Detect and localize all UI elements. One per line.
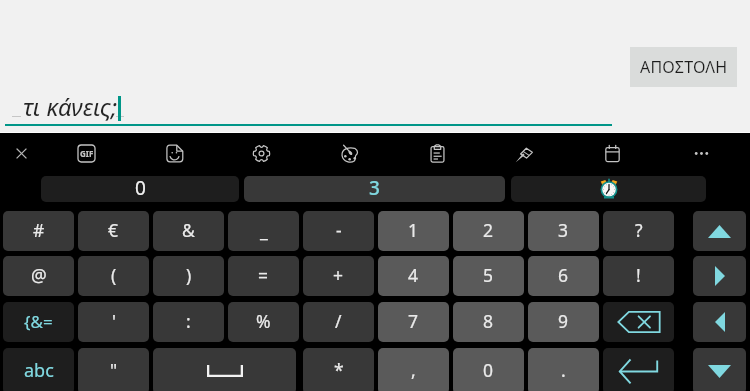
button[interactable]: +	[303, 256, 374, 296]
button[interactable]: )	[153, 256, 224, 296]
staticText: €	[108, 218, 119, 242]
staticText: 7	[408, 309, 419, 333]
staticText: ,	[411, 358, 416, 382]
button[interactable]: 8	[453, 302, 524, 342]
staticText: 4	[408, 263, 419, 287]
button[interactable]: 0	[453, 348, 524, 391]
button[interactable]: Space	[153, 348, 296, 391]
staticText: 5	[483, 263, 494, 287]
button[interactable]: =	[228, 256, 299, 296]
staticText: 3	[369, 176, 380, 201]
staticText: 2	[483, 218, 494, 242]
staticText: +	[333, 263, 344, 287]
staticText: -	[336, 218, 342, 242]
staticText: 9	[558, 309, 569, 333]
staticText: '	[112, 309, 116, 333]
staticText: *	[334, 358, 344, 382]
button[interactable]: 9	[528, 302, 599, 342]
button[interactable]: Close keyboard	[1, 133, 41, 173]
staticText: %	[256, 309, 271, 333]
button[interactable]: *	[303, 348, 374, 391]
staticText: )	[186, 263, 192, 287]
button[interactable]: Themes	[330, 133, 370, 173]
staticText: GIF	[80, 148, 94, 159]
button[interactable]: 4	[378, 256, 449, 296]
button[interactable]: 3	[528, 211, 599, 251]
button[interactable]: Move cursor right	[693, 256, 746, 296]
button[interactable]: Calendar	[592, 133, 632, 173]
button[interactable]: 3	[244, 176, 505, 202]
staticText: @	[31, 263, 47, 287]
staticText: 0	[483, 358, 494, 382]
staticText: (	[111, 263, 117, 287]
button[interactable]: {&=	[3, 302, 74, 342]
button[interactable]: #	[3, 211, 74, 251]
staticText: !	[636, 263, 641, 287]
button[interactable]: 6	[528, 256, 599, 296]
button[interactable]: -	[303, 211, 374, 251]
button[interactable]: Backspace	[603, 302, 674, 342]
button[interactable]: abc	[3, 348, 74, 391]
button[interactable]: More options	[681, 133, 721, 173]
button[interactable]: "	[78, 348, 149, 391]
staticText: "	[110, 358, 118, 382]
staticText: ?	[635, 218, 643, 242]
button[interactable]: Pin	[504, 133, 544, 173]
button[interactable]: (	[78, 256, 149, 296]
staticText: =	[258, 263, 269, 287]
button[interactable]: _	[228, 211, 299, 251]
button[interactable]: ΑΠΟΣΤΟΛΗ	[630, 47, 737, 87]
staticText: .	[561, 358, 566, 382]
button[interactable]: GIF	[66, 133, 106, 173]
button[interactable]	[511, 176, 706, 202]
staticText: #	[33, 218, 45, 242]
staticText: /	[335, 309, 342, 333]
button[interactable]: Shift	[693, 211, 746, 251]
button[interactable]: 7	[378, 302, 449, 342]
button[interactable]: :	[153, 302, 224, 342]
button[interactable]: 2	[453, 211, 524, 251]
button[interactable]: &	[153, 211, 224, 251]
button[interactable]: %	[228, 302, 299, 342]
button[interactable]: Settings	[241, 133, 281, 173]
button[interactable]: Move cursor down	[693, 348, 746, 391]
button[interactable]: ,	[378, 348, 449, 391]
staticText: 1	[408, 218, 419, 242]
button[interactable]: 1	[378, 211, 449, 251]
button[interactable]: Move cursor left	[693, 302, 746, 342]
button[interactable]: 0	[41, 176, 239, 202]
staticText: 0	[135, 176, 146, 201]
button[interactable]: ?	[603, 211, 674, 251]
staticText: &	[182, 218, 195, 242]
button[interactable]: @	[3, 256, 74, 296]
staticText: 3	[558, 218, 569, 242]
staticText: 8	[483, 309, 494, 333]
staticText: 6	[558, 263, 569, 287]
staticText: {&=	[24, 310, 53, 333]
button[interactable]: Enter	[603, 348, 674, 391]
button[interactable]: τι κάνεις;	[0, 88, 612, 133]
button[interactable]: '	[78, 302, 149, 342]
button[interactable]: !	[603, 256, 674, 296]
staticText: τι κάνεις;	[23, 90, 118, 123]
button[interactable]: .	[528, 348, 599, 391]
staticText: ΑΠΟΣΤΟΛΗ	[640, 56, 728, 78]
button[interactable]: €	[78, 211, 149, 251]
button[interactable]: 5	[453, 256, 524, 296]
staticText: abc	[24, 358, 54, 383]
button[interactable]: /	[303, 302, 374, 342]
staticText: _	[260, 218, 268, 242]
staticText: :	[186, 309, 191, 333]
button[interactable]: Clipboard	[417, 133, 457, 173]
button[interactable]: Stickers	[154, 133, 194, 173]
